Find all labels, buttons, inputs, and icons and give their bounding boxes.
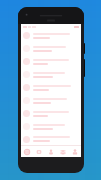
button[interactable] (21, 55, 81, 68)
button[interactable] (21, 68, 81, 81)
button[interactable] (21, 107, 81, 120)
button[interactable] (21, 29, 81, 42)
button[interactable] (21, 133, 81, 145)
button[interactable] (21, 42, 81, 55)
button[interactable]: Groups (57, 146, 69, 157)
button[interactable]: Account (69, 146, 81, 157)
button[interactable]: Photos (33, 146, 45, 157)
button[interactable] (21, 81, 81, 94)
button[interactable] (21, 120, 81, 133)
button[interactable] (21, 94, 81, 107)
button[interactable]: Profile (45, 146, 57, 157)
button[interactable]: Explore (21, 146, 33, 157)
